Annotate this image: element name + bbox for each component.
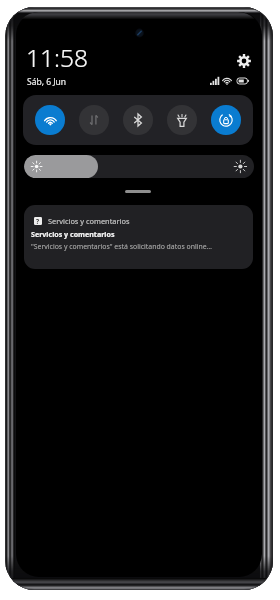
button[interactable]: Settings bbox=[235, 52, 253, 70]
button[interactable]: Auto rotate bbox=[204, 98, 248, 142]
staticText: Servicios y comentarios bbox=[48, 216, 130, 226]
button[interactable]: Wi-Fi bbox=[28, 98, 72, 142]
staticText: Sáb, 6 Jun bbox=[27, 76, 67, 88]
staticText: ? bbox=[36, 217, 40, 225]
staticText: Servicios y comentarios bbox=[31, 229, 115, 239]
button[interactable]: Bluetooth bbox=[116, 98, 160, 142]
staticText: "Servicios y comentarios" está solicitan… bbox=[31, 242, 213, 251]
button[interactable]: Brightness bbox=[24, 155, 254, 178]
staticText: 11:58 bbox=[26, 41, 88, 74]
button[interactable]: Mobile data bbox=[72, 98, 116, 142]
button[interactable]: Flashlight bbox=[160, 98, 204, 142]
button[interactable]: ? bbox=[24, 205, 253, 269]
